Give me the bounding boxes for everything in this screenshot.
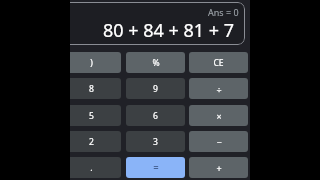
staticText: + bbox=[216, 162, 222, 174]
staticText: 8 bbox=[89, 83, 94, 95]
staticText: 5 bbox=[89, 110, 94, 122]
staticText: − bbox=[216, 136, 222, 148]
button[interactable]: 6 bbox=[126, 105, 185, 126]
staticText: 6 bbox=[153, 110, 158, 122]
staticText: . bbox=[90, 162, 93, 174]
button[interactable]: % bbox=[126, 52, 185, 73]
staticText: ÷ bbox=[216, 83, 222, 95]
staticText: ) bbox=[90, 57, 93, 69]
button[interactable]: Ans = 0 bbox=[70, 2, 245, 45]
button[interactable]: 9 bbox=[126, 78, 185, 99]
staticText: Ans = 0 bbox=[208, 6, 239, 18]
button[interactable]: 3 bbox=[126, 131, 185, 152]
button[interactable]: 5 bbox=[70, 105, 121, 126]
staticText: % bbox=[152, 57, 160, 69]
button[interactable]: Minus bbox=[189, 131, 248, 152]
staticText: 80 + 84 + 81 + 7 bbox=[103, 18, 235, 43]
staticText: 9 bbox=[153, 83, 158, 95]
staticText: × bbox=[216, 110, 222, 122]
button[interactable]: Divide bbox=[189, 78, 248, 99]
button[interactable]: ) bbox=[70, 52, 121, 73]
button[interactable]: 2 bbox=[70, 131, 121, 152]
staticText: 3 bbox=[153, 136, 158, 148]
button[interactable]: Equals bbox=[126, 157, 185, 178]
button[interactable]: Multiply bbox=[189, 105, 248, 126]
button[interactable]: . bbox=[70, 157, 121, 178]
staticText: 2 bbox=[89, 136, 94, 148]
staticText: CE bbox=[213, 57, 224, 69]
button[interactable]: CE bbox=[189, 52, 248, 73]
button[interactable]: Plus bbox=[189, 157, 248, 178]
staticText: = bbox=[153, 161, 159, 174]
button[interactable]: 8 bbox=[70, 78, 121, 99]
